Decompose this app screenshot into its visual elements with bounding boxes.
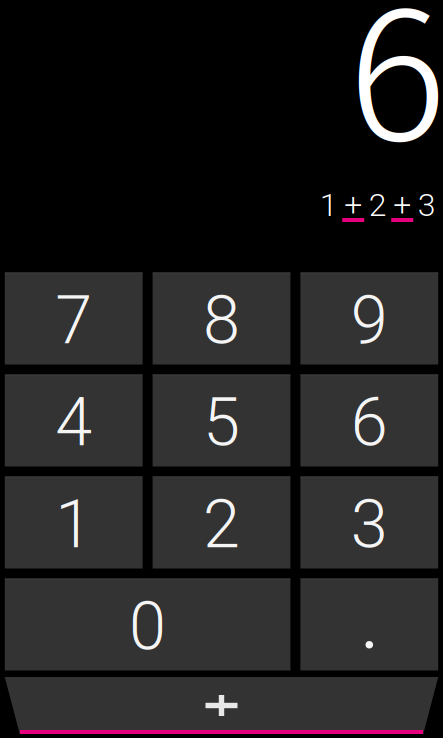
staticText: 5 xyxy=(203,383,240,461)
staticText: 3 xyxy=(418,186,436,224)
staticText: 7 xyxy=(55,281,92,359)
staticText: 6 xyxy=(346,0,443,192)
staticText: 2 xyxy=(369,186,387,224)
button[interactable] xyxy=(5,677,438,734)
button[interactable]: 0 xyxy=(5,578,290,670)
button[interactable]: 1 xyxy=(5,476,143,568)
button[interactable]: 6 xyxy=(300,374,438,466)
staticText: 4 xyxy=(55,383,92,461)
button[interactable]: 8 xyxy=(153,272,290,364)
staticText: 0 xyxy=(129,587,166,665)
button[interactable]: 2 xyxy=(153,476,290,568)
button[interactable]: Decimal point xyxy=(300,578,438,670)
staticText: + xyxy=(393,186,411,224)
staticText: 9 xyxy=(351,281,388,359)
button[interactable]: 7 xyxy=(5,272,143,364)
staticText: 1 xyxy=(55,485,92,563)
button[interactable]: 3 xyxy=(300,476,438,568)
staticText: 2 xyxy=(203,485,240,563)
button[interactable]: 5 xyxy=(153,374,290,466)
staticText: 1 xyxy=(320,186,338,224)
staticText: 3 xyxy=(351,485,388,563)
button[interactable]: 9 xyxy=(300,272,438,364)
staticText: 6 xyxy=(351,383,388,461)
staticText: + xyxy=(344,186,362,224)
button[interactable]: 4 xyxy=(5,374,143,466)
staticText: 8 xyxy=(203,281,240,359)
